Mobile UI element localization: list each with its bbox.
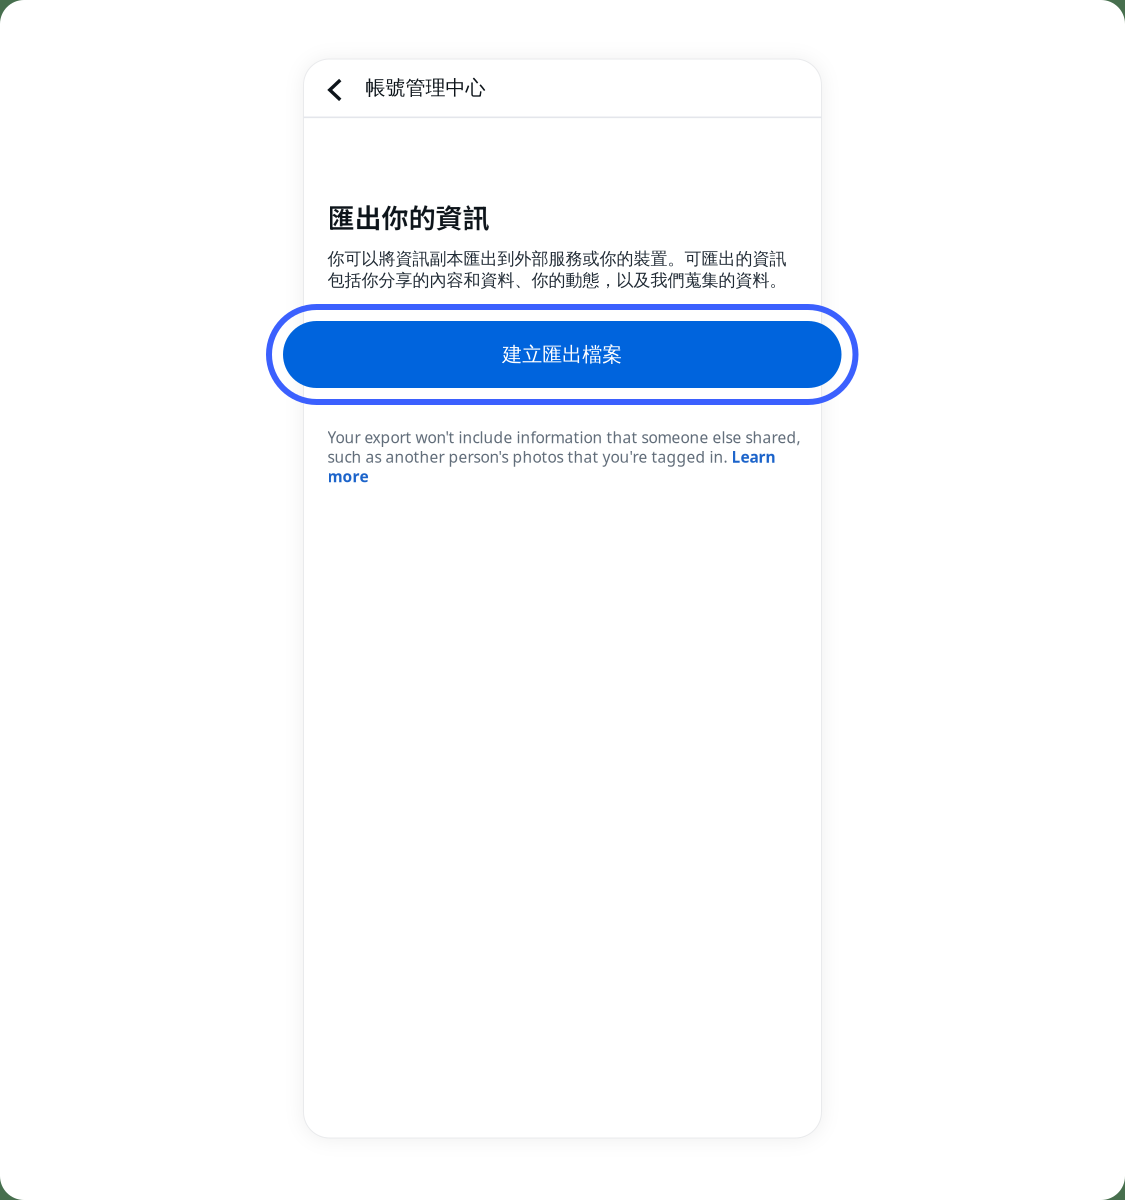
staticText: 建立匯出檔案 [502,342,622,367]
staticText: 匯出你的資訊 [327,197,489,236]
staticText: Your export won't include information th… [327,427,800,487]
button[interactable]: Back [303,61,366,119]
staticText: 你可以將資訊副本匯出到外部服務或你的裝置。可匯出的資訊包括你分享的內容和資料、你… [327,248,786,291]
button[interactable]: 建立匯出檔案 [269,307,855,402]
button[interactable]: Learn more [327,444,379,484]
staticText: 帳號管理中心 [366,75,486,100]
